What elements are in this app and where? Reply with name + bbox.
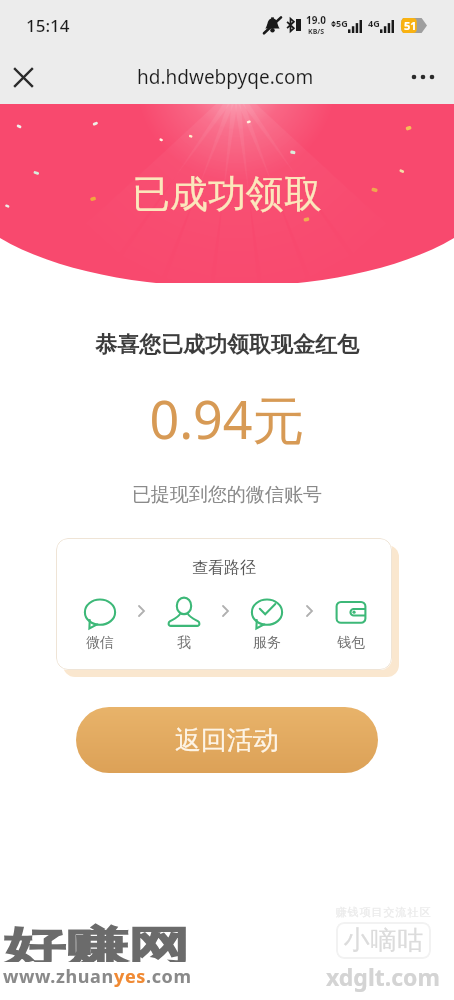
button[interactable]: 微信 — [79, 594, 121, 652]
staticText: 已提现到您的微信账号 — [0, 483, 454, 507]
staticText: 4G — [368, 17, 380, 29]
button[interactable]: 服务 — [246, 594, 288, 652]
staticText: 查看路径 — [192, 558, 256, 578]
staticText: .com — [146, 964, 192, 989]
staticText: yes — [114, 964, 146, 989]
staticText: 好赚网 — [3, 922, 190, 962]
staticText: 恭喜您已成功领取现金红包 — [0, 331, 454, 359]
button[interactable]: Close — [0, 54, 46, 100]
staticText: xdglt.com — [326, 961, 440, 992]
staticText: www.zhuan — [3, 964, 114, 989]
button[interactable]: 钱包 — [330, 594, 372, 652]
staticText: 15:14 — [26, 14, 70, 37]
staticText: 赚钱项目交流社区 — [335, 905, 431, 919]
staticText: 51 — [404, 18, 417, 33]
staticText: KB/S — [308, 27, 325, 37]
staticText: hd.hdwebpyqe.com — [137, 64, 314, 90]
staticText: 已成功领取 — [0, 170, 454, 218]
staticText: 微信 — [86, 634, 114, 652]
staticText: 钱包 — [337, 634, 365, 652]
button[interactable]: More options — [400, 54, 446, 100]
staticText: 我 — [177, 634, 191, 652]
button[interactable]: 我 — [163, 594, 205, 652]
button[interactable]: 返回活动 — [76, 707, 378, 773]
staticText: 返回活动 — [175, 724, 279, 757]
staticText: 服务 — [253, 634, 281, 652]
staticText: 5G — [336, 17, 348, 29]
staticText: 19.0 — [306, 13, 326, 27]
staticText: 小嘀咕 — [343, 924, 424, 957]
staticText: 0.94元 — [0, 383, 454, 454]
